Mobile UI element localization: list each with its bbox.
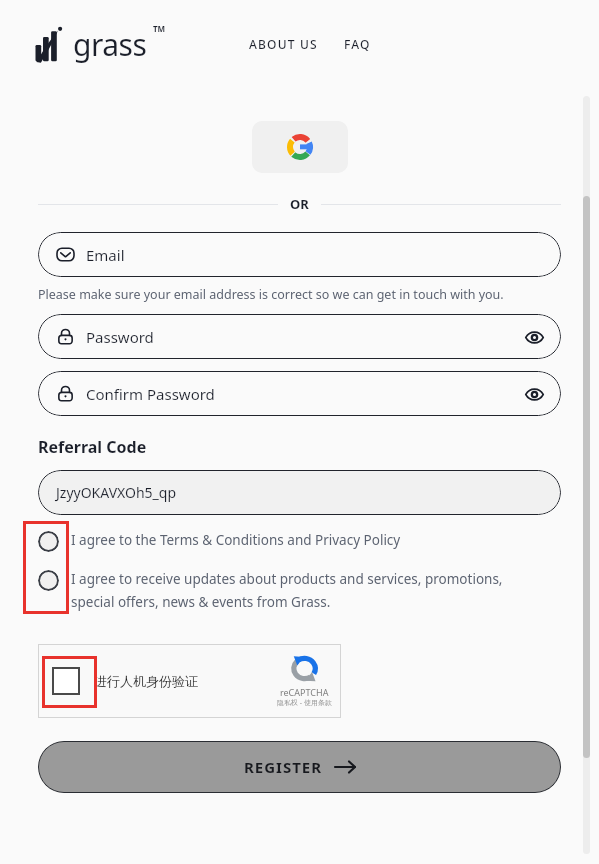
button[interactable]: Show password <box>520 323 548 351</box>
button[interactable]: Toggle consent <box>38 531 59 552</box>
button[interactable]: REGISTER <box>38 741 561 793</box>
button[interactable]: Password <box>38 314 561 359</box>
staticText: REGISTER <box>244 757 323 777</box>
button[interactable]: Show password <box>520 380 548 408</box>
button[interactable]: Confirm Password <box>38 371 561 416</box>
staticText: Email <box>86 245 125 265</box>
staticText: I agree to receive updates about product… <box>71 570 503 588</box>
staticText: Please make sure your email address is c… <box>38 286 504 303</box>
button[interactable]: Sign in with Google <box>252 121 348 173</box>
staticText: OR <box>290 195 309 213</box>
button[interactable]: I am not a robot <box>38 644 341 718</box>
staticText: I agree to the Terms & Conditions and Pr… <box>71 531 401 549</box>
button[interactable]: JzyyOKAVXOh5_qp <box>38 470 561 515</box>
staticText: JzyyOKAVXOh5_qp <box>56 483 177 502</box>
button[interactable]: FAQ <box>341 29 374 59</box>
staticText: reCAPTCHA <box>280 686 329 698</box>
button[interactable]: Toggle consent <box>38 570 59 591</box>
staticText: TM <box>153 23 166 34</box>
staticText: Confirm Password <box>86 384 215 404</box>
staticText: Referral Code <box>38 436 147 458</box>
staticText: special offers, news & events from Grass… <box>71 593 331 611</box>
staticText: 隐私权 - 使用条款 <box>277 698 332 708</box>
staticText: grass <box>73 24 147 65</box>
staticText: 进行人机身份验证 <box>94 673 198 689</box>
staticText: FAQ <box>344 36 371 52</box>
button[interactable]: Email <box>38 232 561 277</box>
staticText: ABOUT US <box>249 36 318 52</box>
button[interactable]: ABOUT US <box>246 29 321 59</box>
other: I am not a robot <box>52 667 80 695</box>
staticText: Password <box>86 327 154 347</box>
